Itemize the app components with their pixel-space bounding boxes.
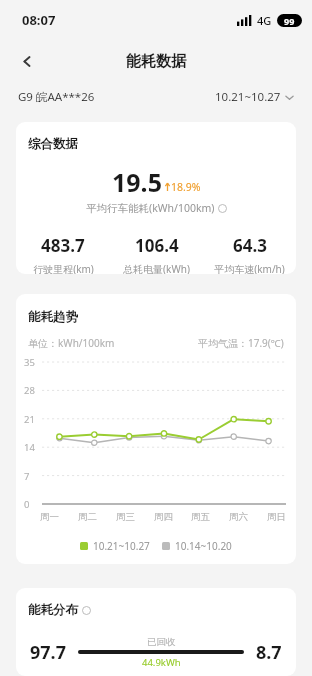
staticText: 106.4 bbox=[135, 234, 179, 257]
staticText: 10.14~10.20 bbox=[175, 539, 232, 553]
staticText: 7 bbox=[24, 470, 30, 483]
staticText: 周二 bbox=[78, 511, 97, 523]
staticText: 周六 bbox=[229, 511, 248, 523]
staticText: 单位：kWh/100km bbox=[28, 336, 115, 350]
staticText: 周三 bbox=[116, 511, 135, 523]
staticText: 总耗电量(kWh) bbox=[123, 262, 190, 274]
staticText: 能耗趋势 bbox=[28, 309, 78, 325]
staticText: 08:07 bbox=[22, 11, 56, 29]
staticText: 周四 bbox=[154, 511, 173, 523]
staticText: 35 bbox=[24, 356, 35, 369]
staticText: 0 bbox=[24, 498, 30, 511]
staticText: 19.5 bbox=[112, 165, 162, 199]
staticText: 99 bbox=[284, 15, 295, 27]
staticText: 周日 bbox=[267, 511, 286, 523]
button[interactable]: 10.21~10.27 bbox=[215, 89, 294, 105]
staticText: 64.3 bbox=[233, 234, 267, 257]
staticText: 平均行车能耗(kWh/100km) bbox=[86, 201, 215, 215]
staticText: 能耗数据 bbox=[126, 52, 186, 71]
staticText: 21 bbox=[24, 413, 35, 426]
staticText: 综合数据 bbox=[28, 136, 78, 152]
staticText: 4G bbox=[257, 13, 272, 28]
staticText: 483.7 bbox=[41, 234, 85, 257]
staticText: 行驶里程(km) bbox=[33, 262, 94, 274]
staticText: 14 bbox=[24, 441, 35, 454]
staticText: 已回收 bbox=[147, 636, 176, 648]
staticText: 能耗分布 bbox=[28, 602, 78, 618]
staticText: 18.9% bbox=[171, 180, 201, 194]
button[interactable]: Back bbox=[10, 44, 44, 78]
staticText: 44.9kWh bbox=[142, 656, 181, 669]
staticText: 10.21~10.27 bbox=[93, 539, 150, 553]
staticText: 周五 bbox=[191, 511, 210, 523]
staticText: G9 皖AA***26 bbox=[18, 89, 95, 105]
staticText: 平均气温：17.9(℃) bbox=[198, 336, 284, 350]
staticText: 28 bbox=[24, 384, 35, 397]
staticText: 周一 bbox=[40, 511, 59, 523]
staticText: 97.7 bbox=[30, 640, 66, 665]
staticText: 8.7 bbox=[256, 640, 282, 665]
staticText: 10.21~10.27 bbox=[215, 89, 281, 105]
staticText: 平均车速(km/h) bbox=[214, 262, 285, 274]
